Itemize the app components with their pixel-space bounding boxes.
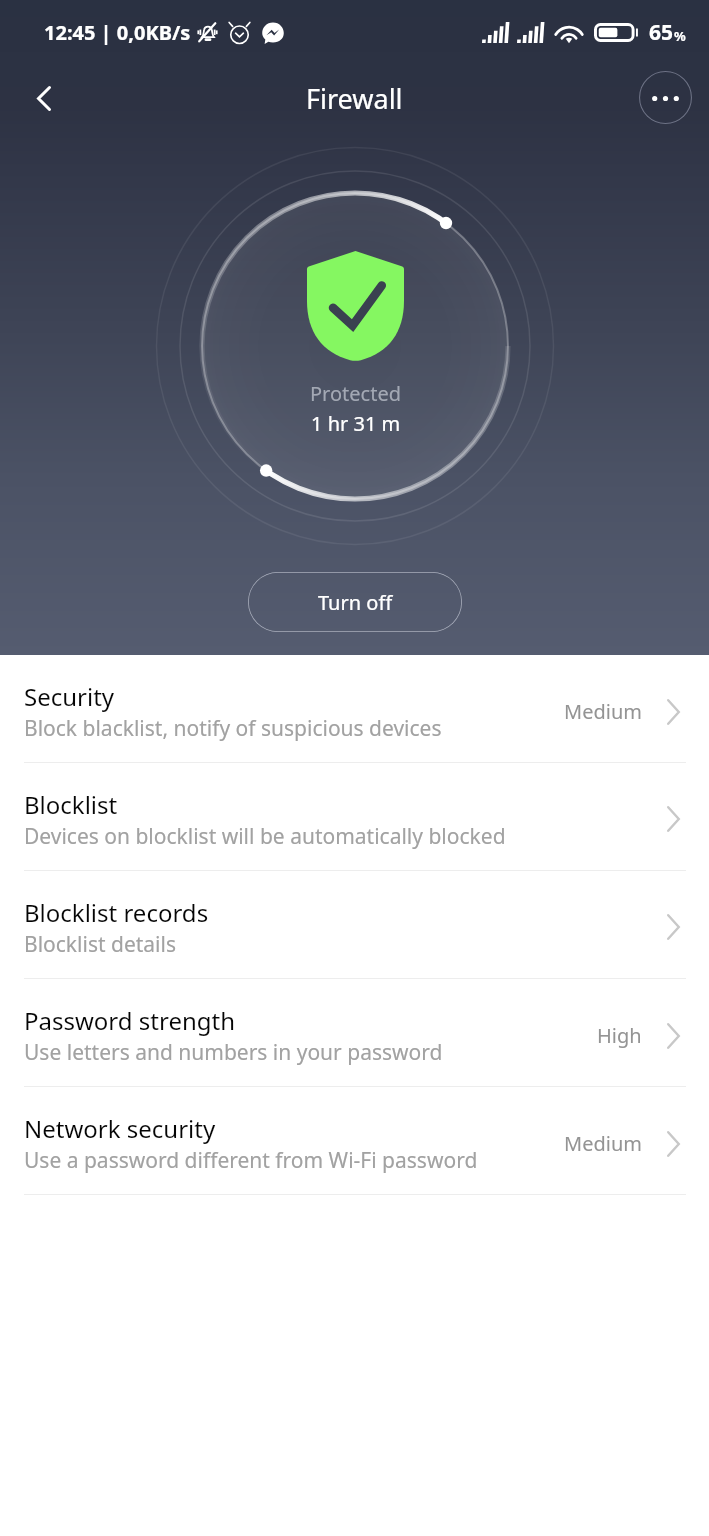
staticText: Firewall [306, 80, 403, 117]
staticText: % [674, 27, 686, 45]
staticText: Turn off [318, 589, 393, 616]
staticText: Security [24, 680, 115, 713]
button[interactable]: Security [0, 655, 709, 763]
staticText: Network security [24, 1112, 216, 1145]
button[interactable]: More options [639, 71, 692, 124]
staticText: 1 hr 31 m [311, 410, 401, 437]
button[interactable]: Blocklist [0, 763, 709, 871]
staticText: Protected [310, 380, 401, 407]
staticText: Medium [564, 698, 642, 725]
staticText: 65 [649, 18, 674, 47]
staticText: Block blacklist, notify of suspicious de… [24, 714, 442, 743]
staticText: Medium [564, 1130, 642, 1157]
button[interactable]: Password strength [0, 979, 709, 1087]
button[interactable]: Blocklist records [0, 871, 709, 979]
staticText: 12:45 | 0,0KB/s [44, 19, 191, 46]
button[interactable]: Back [20, 74, 68, 122]
staticText: Blocklist records [24, 896, 209, 929]
staticText: Use letters and numbers in your password [24, 1038, 443, 1067]
staticText: Blocklist details [24, 930, 177, 959]
button[interactable]: Turn off [248, 572, 462, 632]
button[interactable]: Network security [0, 1087, 709, 1195]
staticText: High [597, 1022, 642, 1049]
staticText: Blocklist [24, 788, 118, 821]
staticText: Password strength [24, 1004, 236, 1037]
staticText: Devices on blocklist will be automatical… [24, 822, 506, 851]
staticText: Use a password different from Wi-Fi pass… [24, 1146, 478, 1175]
